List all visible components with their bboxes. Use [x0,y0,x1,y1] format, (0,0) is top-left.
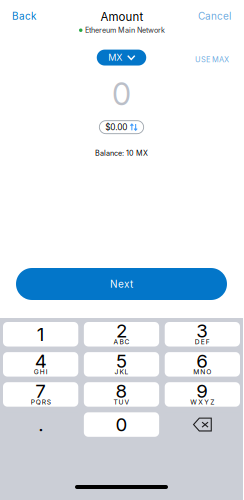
button[interactable]: Delete [165,412,240,437]
button[interactable]: 5 [84,352,159,377]
staticText: Cancel [198,10,231,22]
staticText: . [38,413,43,436]
button[interactable]: MX [97,50,146,66]
staticText: M N O [193,368,211,376]
staticText: 0 [115,413,127,436]
button[interactable]: 6 [165,352,240,377]
staticText: 2 [116,319,127,342]
button[interactable]: 4 [3,352,78,377]
staticText: MX [108,52,122,63]
button[interactable]: Back [12,10,36,22]
button[interactable]: 2 [84,322,159,346]
staticText: 3 [196,319,208,342]
button[interactable]: $0.00 [99,121,144,134]
staticText: 8 [115,380,127,402]
staticText: 4 [35,350,47,372]
staticText: Ethereum Main Network [85,26,165,35]
staticText: $0.00 [105,122,127,132]
button[interactable]: 1 [3,322,78,346]
button[interactable]: USE MAX [195,55,229,64]
staticText: Next [110,278,133,290]
button[interactable]: Cancel [198,10,231,22]
staticText: P Q R S [31,398,51,406]
button[interactable]: 7 [3,382,78,407]
staticText: A B C [113,338,129,346]
staticText: T U V [113,398,129,406]
staticText: J K L [114,368,128,376]
staticText: Back [12,10,36,22]
staticText: 5 [116,350,127,372]
staticText: D E F [195,338,210,346]
staticText: 1 [37,323,45,346]
staticText: 7 [35,380,46,402]
staticText: 6 [196,350,208,372]
button[interactable]: Next [16,268,227,300]
staticText: 9 [196,380,208,402]
staticText: Balance: 10 MX [95,149,148,157]
button[interactable]: 9 [165,382,240,407]
button[interactable]: 3 [165,322,240,346]
button[interactable]: 0 [84,412,159,437]
staticText: G H I [34,368,48,376]
staticText: USE MAX [195,55,229,64]
staticText: W X Y Z [190,398,214,406]
staticText: 0 [112,76,131,113]
button[interactable]: 8 [84,382,159,407]
staticText: Amount [100,10,143,24]
button[interactable]: . [3,412,78,437]
